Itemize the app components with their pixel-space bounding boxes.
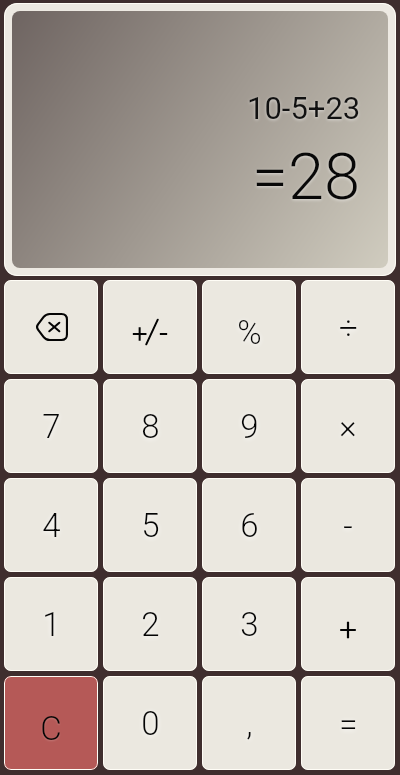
button[interactable]: Decimal separator bbox=[202, 676, 296, 770]
button[interactable]: Toggle sign bbox=[103, 280, 197, 374]
staticText: C bbox=[40, 709, 62, 748]
button[interactable]: Seven bbox=[4, 379, 98, 473]
staticText: 2 bbox=[141, 605, 160, 644]
staticText: 0 bbox=[141, 704, 160, 743]
button[interactable]: Zero bbox=[103, 676, 197, 770]
button[interactable]: Percent bbox=[202, 280, 296, 374]
staticText: 7 bbox=[42, 407, 61, 446]
button[interactable]: Multiply bbox=[301, 379, 395, 473]
staticText: 9 bbox=[240, 407, 259, 446]
button[interactable]: Three bbox=[202, 577, 296, 671]
staticText: % bbox=[237, 313, 262, 352]
staticText: , bbox=[246, 704, 253, 743]
button[interactable]: Eight bbox=[103, 379, 197, 473]
button[interactable]: Clear bbox=[4, 676, 98, 770]
staticText: 5 bbox=[141, 506, 160, 545]
button[interactable]: Equals bbox=[301, 676, 395, 770]
staticText: =28 bbox=[252, 139, 361, 215]
staticText: 6 bbox=[240, 506, 259, 545]
button[interactable]: Plus bbox=[301, 577, 395, 671]
staticText: 1 bbox=[42, 605, 61, 644]
button[interactable]: Minus bbox=[301, 478, 395, 572]
button[interactable]: One bbox=[4, 577, 98, 671]
staticText: = bbox=[339, 705, 358, 744]
button[interactable]: Four bbox=[4, 478, 98, 572]
staticText: × bbox=[339, 407, 357, 446]
staticText: 10-5+23 bbox=[247, 90, 361, 126]
button[interactable]: Six bbox=[202, 478, 296, 572]
button[interactable]: Five bbox=[103, 478, 197, 572]
staticText: 3 bbox=[240, 605, 259, 644]
button[interactable]: Nine bbox=[202, 379, 296, 473]
staticText: - bbox=[343, 507, 353, 546]
button[interactable]: Two bbox=[103, 577, 197, 671]
staticText: ÷ bbox=[339, 308, 358, 347]
staticText: 4 bbox=[42, 506, 61, 545]
button[interactable]: Backspace bbox=[4, 280, 98, 374]
staticText: 8 bbox=[141, 407, 160, 446]
button[interactable]: Divide bbox=[301, 280, 395, 374]
